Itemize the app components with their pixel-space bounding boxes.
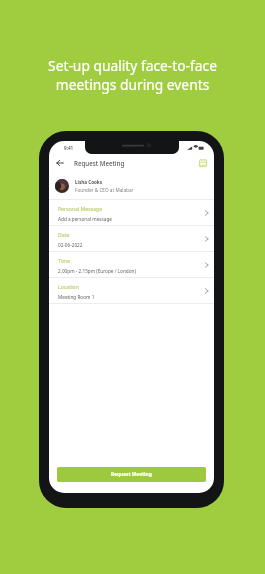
button[interactable]: Location bbox=[49, 278, 214, 303]
staticText: Personal Message bbox=[58, 206, 103, 213]
button[interactable]: Date bbox=[49, 226, 214, 251]
staticText: Add a personal message bbox=[58, 216, 113, 222]
staticText: 9:41 bbox=[64, 145, 74, 151]
staticText: Request Meeting bbox=[111, 471, 152, 478]
staticText: Meeting Room 1 bbox=[58, 294, 95, 300]
staticText: Set-up quality face-to-face meetings dur… bbox=[0, 56, 265, 94]
button[interactable]: Time bbox=[49, 252, 214, 277]
button[interactable]: Request Meeting bbox=[57, 467, 206, 482]
staticText: Date bbox=[58, 232, 70, 239]
staticText: Location bbox=[58, 284, 79, 291]
staticText: Time bbox=[58, 258, 70, 265]
staticText: Request Meeting bbox=[74, 159, 125, 167]
staticText: Lisha Cooks bbox=[75, 179, 103, 185]
staticText: 02-06-2022 bbox=[58, 242, 83, 248]
button[interactable]: Back bbox=[51, 154, 69, 172]
button[interactable]: Personal Message bbox=[49, 200, 214, 225]
staticText: Founder & CEO at Malabar bbox=[75, 187, 134, 193]
staticText: 2.00pm - 2.15pm (Europe / London) bbox=[58, 268, 136, 274]
button[interactable]: Calendar bbox=[195, 155, 211, 171]
